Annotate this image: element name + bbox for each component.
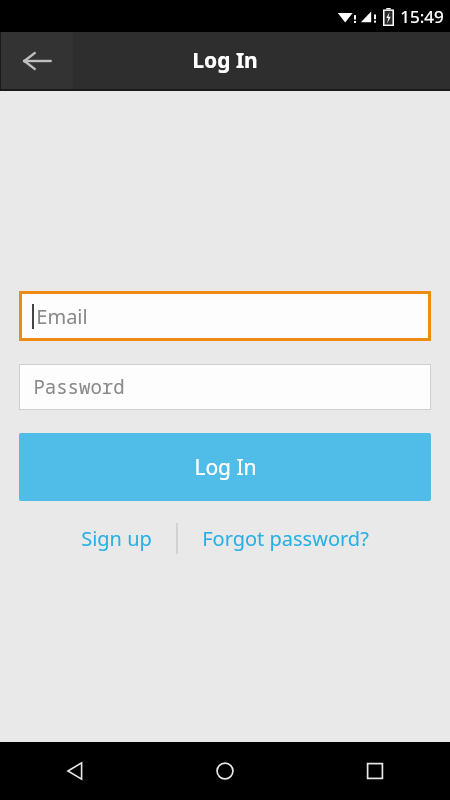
button[interactable]: Password bbox=[19, 364, 431, 410]
button[interactable]: Email bbox=[19, 291, 431, 341]
staticText: Log In bbox=[192, 46, 258, 75]
button[interactable]: Sign up bbox=[81, 525, 152, 552]
staticText: Password bbox=[33, 374, 125, 400]
button[interactable]: Forgot password? bbox=[202, 525, 369, 552]
staticText: Forgot password? bbox=[202, 525, 369, 552]
staticText: Log In bbox=[194, 453, 257, 482]
button[interactable]: Back bbox=[0, 742, 150, 800]
staticText: 15:49 bbox=[400, 5, 444, 28]
staticText: Sign up bbox=[81, 525, 152, 552]
staticText: Email bbox=[36, 303, 88, 330]
button[interactable]: Recent apps bbox=[300, 742, 450, 800]
button[interactable]: Home bbox=[150, 742, 300, 800]
button[interactable]: Back bbox=[0, 32, 73, 89]
button[interactable]: Log In bbox=[19, 433, 431, 501]
